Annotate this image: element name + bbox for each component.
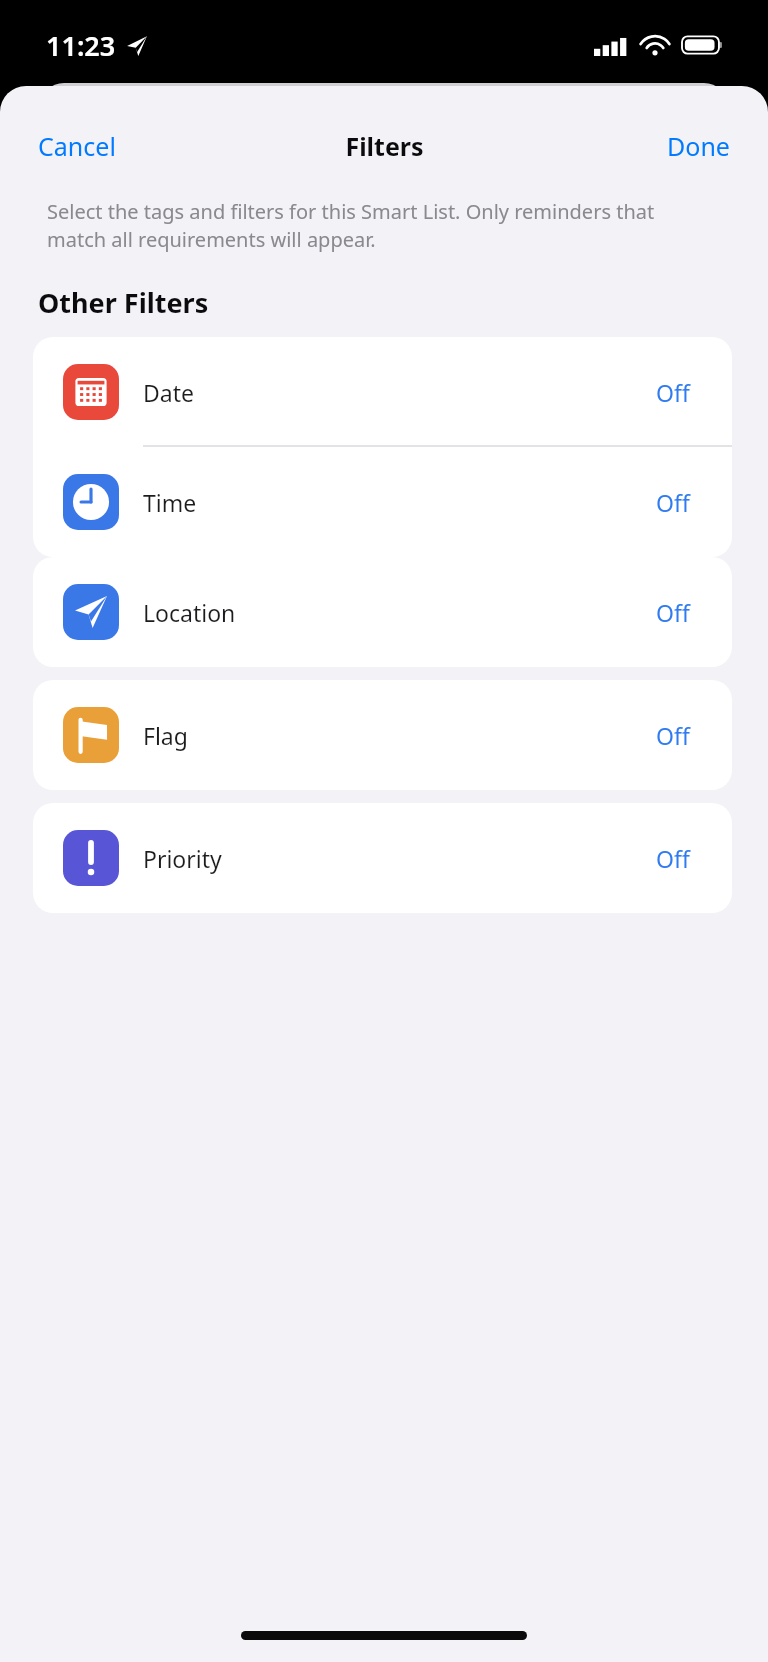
staticText: Flag (143, 720, 188, 751)
staticText: Off (656, 377, 690, 408)
button[interactable]: Priority (33, 803, 732, 913)
staticText: Other Filters (38, 284, 209, 321)
button[interactable]: Flag (33, 680, 732, 790)
staticText: Location (143, 597, 236, 628)
staticText: Off (656, 597, 690, 628)
button[interactable]: Done (629, 115, 768, 177)
button[interactable]: Date (33, 337, 732, 447)
staticText: Off (656, 487, 690, 518)
staticText: Filters (345, 129, 424, 163)
staticText: Priority (143, 843, 222, 874)
staticText: Off (656, 843, 690, 874)
staticText: Time (143, 487, 197, 518)
staticText: Off (656, 720, 690, 751)
button[interactable]: Location (33, 557, 732, 667)
staticText: Date (143, 377, 194, 408)
staticText: Select the tags and filters for this Sma… (47, 198, 687, 253)
button[interactable]: Cancel (0, 115, 154, 177)
staticText: 11:23 (46, 27, 116, 64)
staticText: Cancel (38, 129, 116, 163)
staticText: Done (667, 129, 730, 163)
button[interactable]: Time (33, 447, 732, 557)
